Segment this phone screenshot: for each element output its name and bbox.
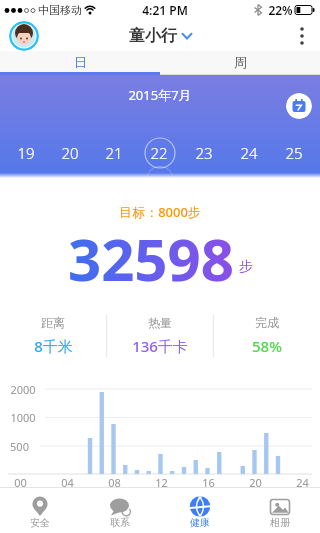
staticText: 22% [268,2,293,18]
staticText: 安全 [30,516,50,529]
staticText: 25 [285,143,303,163]
staticText: 步 [239,258,253,276]
staticText: 2000 [10,382,36,396]
button[interactable] [284,20,320,51]
button[interactable]: 距离 [0,311,106,361]
staticText: 2015年7月 [128,86,192,104]
button[interactable]: 21 [92,139,136,167]
button[interactable]: 热量 [106,311,213,361]
button[interactable]: 联系 [80,488,160,533]
button[interactable]: 周 [160,51,320,72]
staticText: 相册 [270,516,290,529]
button[interactable]: 24 [226,139,271,167]
button[interactable]: 安全 [0,488,80,533]
button[interactable]: 20 [48,139,92,167]
staticText: 1000 [10,410,36,424]
button[interactable] [9,21,39,51]
staticText: 20 [249,475,262,487]
staticText: 00 [14,475,27,487]
button[interactable]: 日 [0,51,160,72]
staticText: 热量 [148,315,172,330]
staticText: 目标：8000步 [119,203,201,221]
staticText: 联系 [110,516,130,529]
button[interactable]: 25 [271,139,316,167]
staticText: 19 [17,143,35,163]
staticText: 24 [296,475,309,487]
staticText: 日 [74,54,87,70]
staticText: 12 [155,475,168,487]
staticText: 04 [61,475,74,487]
button[interactable]: 健康 [160,488,240,533]
button[interactable]: 相册 [240,488,320,533]
staticText: 童小行 [129,26,177,46]
staticText: 健康 [190,516,210,529]
staticText: 08 [108,475,121,487]
staticText: 16 [202,475,215,487]
button[interactable]: 23 [181,139,226,167]
staticText: 58% [252,336,282,356]
staticText: 20 [61,143,79,163]
staticText: 22 [150,143,168,163]
staticText: 4:21 PM [142,2,188,18]
button[interactable]: 22 [136,139,181,167]
staticText: 周 [234,54,247,70]
button[interactable]: 童小行 [129,26,192,46]
button[interactable] [286,93,312,119]
button[interactable]: 完成 [213,311,320,361]
staticText: 32598 [68,219,234,285]
staticText: 23 [195,143,213,163]
staticText: 21 [105,143,123,163]
staticText: 24 [240,143,258,163]
staticText: 完成 [255,315,279,330]
staticText: 中国移动 [38,3,82,17]
staticText: 500 [10,439,29,453]
staticText: 距离 [41,315,65,330]
button[interactable]: 19 [4,139,48,167]
staticText: 136千卡 [132,336,188,356]
staticText: 8千米 [34,336,73,356]
